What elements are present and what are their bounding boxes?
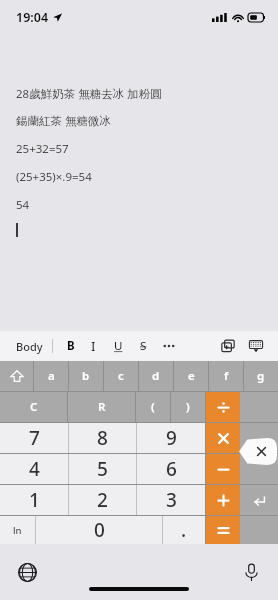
staticText: a xyxy=(48,368,55,384)
button[interactable]: Multiply xyxy=(206,423,240,453)
button[interactable]: 3 xyxy=(137,485,205,515)
button[interactable]: f xyxy=(209,361,243,391)
button[interactable]: . xyxy=(163,516,205,544)
button[interactable]: Hide keyboard xyxy=(244,334,268,358)
button[interactable]: R xyxy=(68,392,135,422)
staticText: 28歲鮮奶茶 無糖去冰 加粉圓 xyxy=(16,86,162,102)
staticText: ln xyxy=(13,524,22,537)
button[interactable]: Body xyxy=(16,339,43,354)
button[interactable]: I xyxy=(81,335,106,357)
button[interactable]: ln xyxy=(0,516,35,544)
button[interactable]: Divide xyxy=(206,392,240,422)
button[interactable]: e xyxy=(174,361,208,391)
staticText: ) xyxy=(186,399,190,415)
staticText: 25+32=57 xyxy=(16,141,69,157)
staticText: c xyxy=(118,368,124,384)
staticText: 1 xyxy=(29,487,40,513)
staticText: 6 xyxy=(166,456,177,482)
button[interactable]: Add xyxy=(206,485,240,515)
staticText: 3 xyxy=(166,487,177,513)
staticText: U xyxy=(114,338,123,354)
staticText: 54 xyxy=(16,197,30,213)
button[interactable]: 5 xyxy=(69,454,136,484)
button[interactable]: 4 xyxy=(0,454,68,484)
staticText: 9 xyxy=(166,425,177,451)
button[interactable]: c xyxy=(104,361,138,391)
staticText: . xyxy=(181,517,187,543)
button[interactable]: b xyxy=(69,361,103,391)
button[interactable]: 7 xyxy=(0,423,68,453)
button[interactable]: Return xyxy=(240,485,278,515)
button[interactable]: 9 xyxy=(137,423,205,453)
staticText: f xyxy=(224,368,229,384)
staticText: 4 xyxy=(29,456,40,482)
button[interactable]: Add attachment xyxy=(216,334,240,358)
button[interactable]: ( xyxy=(136,392,170,422)
button[interactable]: 0 xyxy=(36,516,162,544)
button[interactable]: a xyxy=(34,361,68,391)
button[interactable]: Equals xyxy=(206,516,240,544)
staticText: R xyxy=(98,399,106,415)
button[interactable]: U xyxy=(106,335,131,357)
staticText: B xyxy=(67,338,75,354)
button[interactable]: Subtract xyxy=(206,454,240,484)
staticText: b xyxy=(82,368,90,384)
staticText: 錫蘭紅茶 無糖微冰 xyxy=(16,113,111,129)
button[interactable]: B xyxy=(60,335,81,357)
staticText: d xyxy=(152,368,160,384)
staticText: 2 xyxy=(97,487,108,513)
button[interactable]: g xyxy=(244,361,278,391)
staticText: Body xyxy=(16,339,43,354)
staticText: g xyxy=(257,368,265,384)
button[interactable]: 2 xyxy=(69,485,136,515)
staticText: 19:04 xyxy=(16,9,49,26)
button[interactable]: d xyxy=(139,361,173,391)
staticText: S xyxy=(140,338,147,354)
button[interactable]: 8 xyxy=(69,423,136,453)
staticText: 5 xyxy=(97,456,108,482)
button[interactable]: C xyxy=(0,392,67,422)
staticText: e xyxy=(188,368,195,384)
staticText: 7 xyxy=(29,425,40,451)
staticText: ( xyxy=(151,399,155,415)
button[interactable]: 1 xyxy=(0,485,68,515)
button[interactable]: Change keyboard language xyxy=(14,559,40,585)
staticText: 0 xyxy=(94,517,105,543)
button[interactable]: Shift xyxy=(0,361,33,391)
button[interactable]: 6 xyxy=(137,454,205,484)
button[interactable]: S xyxy=(131,335,156,357)
button[interactable]: More options xyxy=(156,335,181,357)
staticText: I xyxy=(91,338,96,354)
staticText: C xyxy=(30,399,38,415)
staticText: 8 xyxy=(97,425,108,451)
button[interactable]: Close xyxy=(239,438,277,465)
button[interactable]: ) xyxy=(171,392,205,422)
button[interactable]: Voice input xyxy=(238,559,264,585)
staticText: (25+35)×.9=54 xyxy=(16,169,92,185)
